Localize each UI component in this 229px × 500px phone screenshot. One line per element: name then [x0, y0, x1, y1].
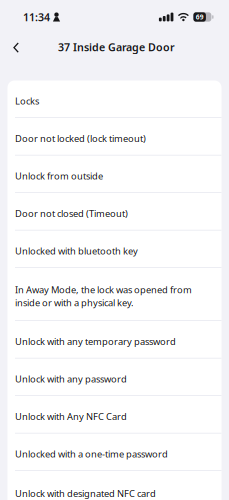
staticText: Door not closed (Timeout) [15, 207, 128, 220]
staticText: Unlock with Any NFC Card [15, 410, 127, 423]
staticText: In Away Mode, the lock was opened from i… [15, 283, 192, 309]
staticText: Door not locked (lock timeout) [15, 132, 146, 145]
staticText: Locks [15, 95, 39, 107]
button[interactable]: Unlock with designated NFC card [7, 471, 221, 500]
staticText: Unlock from outside [15, 170, 103, 182]
staticText: Unlocked with a one-time password [15, 448, 168, 460]
button[interactable]: In Away Mode, the lock was opened from i… [7, 268, 221, 320]
button[interactable]: Unlock with any password [7, 358, 221, 395]
button[interactable]: Unlock from outside [7, 155, 221, 192]
button[interactable]: Unlocked with bluetooth key [7, 230, 221, 267]
staticText: 37 Inside Garage Door [58, 40, 175, 54]
button[interactable]: Door not locked (lock timeout) [7, 118, 221, 155]
staticText: 69 [196, 13, 204, 21]
staticText: Unlock with any password [15, 373, 127, 385]
staticText: Unlocked with bluetooth key [15, 245, 138, 257]
staticText: Unlock with designated NFC card [15, 487, 156, 500]
button[interactable]: Door not closed (Timeout) [7, 193, 221, 230]
button[interactable]: Back [0, 36, 20, 60]
staticText: 11:34 [23, 10, 50, 24]
button[interactable]: Unlock with any temporary password [7, 321, 221, 358]
button[interactable]: Locks [7, 80, 221, 117]
staticText: Unlock with any temporary password [15, 335, 176, 348]
button[interactable]: Unlocked with a one-time password [7, 433, 221, 470]
button[interactable]: Unlock with Any NFC Card [7, 396, 221, 433]
